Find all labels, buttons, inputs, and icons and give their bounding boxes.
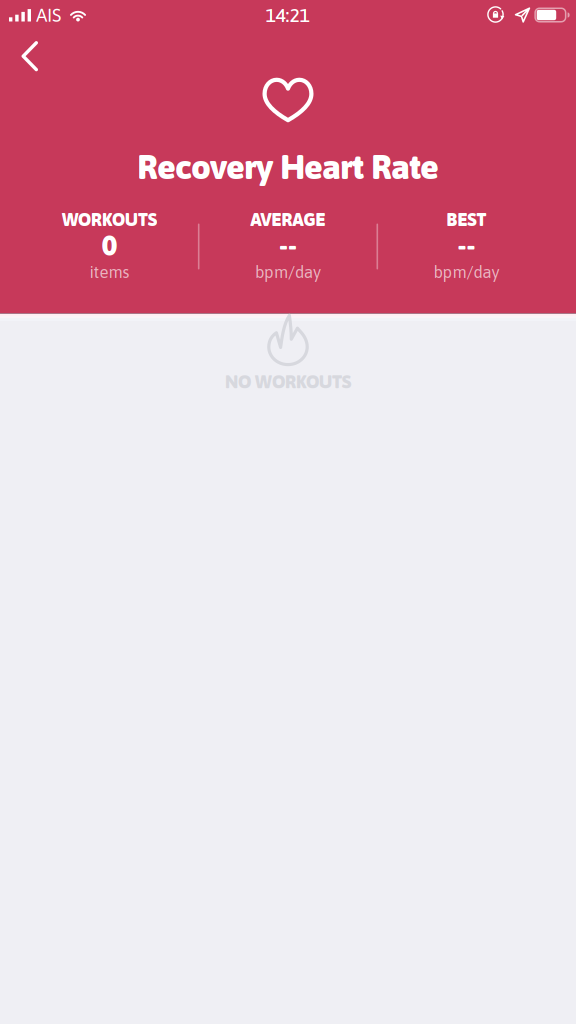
staticText: WORKOUTS (62, 209, 157, 230)
staticText: AVERAGE (250, 209, 325, 230)
staticText: -- (458, 229, 476, 262)
staticText: Recovery Heart Rate (137, 148, 438, 186)
staticText: 14:21 (265, 4, 309, 26)
staticText: AIS (36, 4, 61, 26)
staticText: bpm/day (434, 262, 500, 281)
staticText: bpm/day (255, 262, 321, 281)
staticText: items (89, 262, 129, 281)
staticText: 0 (102, 229, 117, 262)
staticText: -- (279, 229, 297, 262)
staticText: NO WORKOUTS (225, 371, 351, 392)
button[interactable]: Back (0, 30, 57, 74)
staticText: BEST (447, 209, 487, 230)
